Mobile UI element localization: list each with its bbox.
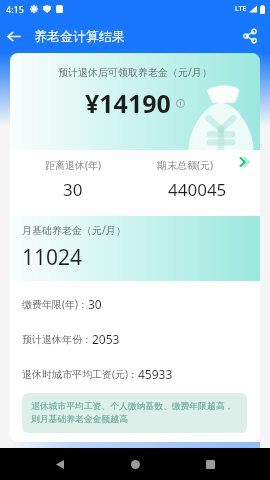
staticText: 退休城市平均工资、个人缴纳基数、缴费年限越高，则月基础养老金金额越高	[31, 401, 234, 425]
staticText: 2053	[92, 331, 120, 347]
staticText: 440045	[168, 178, 227, 201]
staticText: 缴费年限(年)：	[22, 297, 88, 311]
staticText: 养老金计算结果	[34, 28, 125, 44]
staticText: 11024	[22, 243, 83, 272]
button[interactable]: Home	[120, 449, 150, 479]
staticText: 退休时城市平均工资(元)：	[22, 367, 138, 381]
staticText: 期末总额(元)	[157, 158, 213, 172]
staticText: ¥14190	[85, 86, 171, 120]
staticText: 45933	[138, 366, 173, 382]
button[interactable]: 距离退休(年)	[10, 150, 135, 201]
staticText: LTE	[235, 4, 247, 14]
staticText: 预计退休后可领取养老金（元/月）	[58, 65, 212, 79]
button[interactable]: Recent apps	[195, 449, 225, 479]
button[interactable]: Back	[45, 449, 75, 479]
staticText: 30	[63, 178, 83, 201]
staticText: 30	[88, 296, 102, 312]
button[interactable]: Back	[0, 23, 26, 49]
button[interactable]: 期末总额(元)	[135, 150, 260, 201]
button[interactable]: Share	[235, 21, 265, 51]
staticText: 月基础养老金（元/月）	[22, 223, 126, 237]
staticText: 4:15	[6, 3, 24, 15]
staticText: 距离退休(年)	[45, 158, 101, 172]
staticText: 预计退休年份：	[22, 333, 92, 346]
